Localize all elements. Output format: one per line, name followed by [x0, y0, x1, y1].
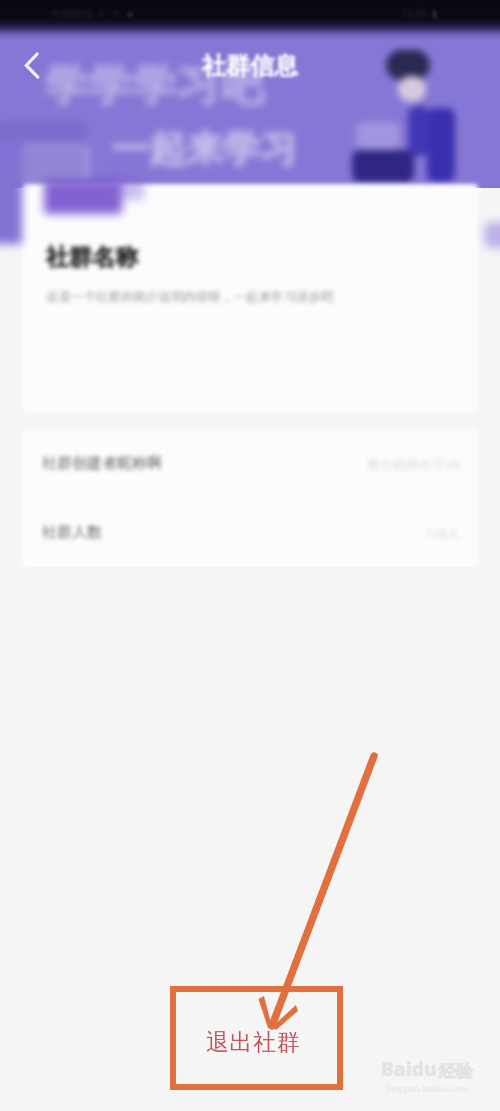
staticText: 社群人数: [42, 523, 102, 542]
staticText: 圈主昵称名字ab: [367, 455, 461, 473]
button[interactable]: Back: [18, 50, 50, 82]
button[interactable]: 退出社群: [170, 986, 343, 1090]
staticText: 中国移动 ıl ᯤ ▪: [52, 6, 134, 20]
staticText: 社群名称: [46, 243, 138, 272]
staticText: 这是一个社群的简介说明内容呀，一起来学习进步吧: [46, 289, 334, 305]
staticText: jingyan.baidu.com: [386, 1082, 469, 1094]
staticText: 社群信息: [202, 51, 298, 81]
staticText: 社群创建者昵称啊: [42, 454, 162, 473]
button[interactable]: 社群创建者昵称啊: [22, 429, 478, 498]
staticText: 一起来学习: [112, 126, 297, 171]
staticText: Baidu: [381, 1056, 437, 1082]
staticText: 学学学习吧: [44, 60, 264, 113]
button[interactable]: 社群人数: [22, 498, 478, 567]
staticText: 16:08 ▮: [401, 6, 438, 20]
staticText: 126人: [425, 524, 461, 542]
staticText: 经验: [439, 1061, 473, 1082]
staticText: 退出社群: [206, 1028, 301, 1057]
